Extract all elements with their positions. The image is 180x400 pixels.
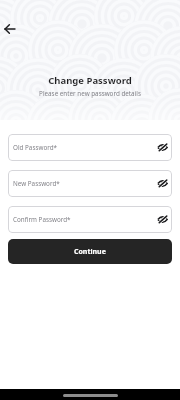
button[interactable]: Toggle password visibility <box>157 142 168 153</box>
button[interactable]: Back <box>2 20 20 38</box>
staticText: Old Password* <box>13 143 58 152</box>
button[interactable]: Confirm Password* <box>8 206 172 233</box>
button[interactable]: New Password* <box>8 170 172 197</box>
button[interactable]: Toggle password visibility <box>157 214 168 225</box>
staticText: Please enter new password details <box>39 89 141 98</box>
staticText: Continue <box>74 247 106 257</box>
button[interactable]: Old Password* <box>8 134 172 161</box>
button[interactable]: Continue <box>8 239 172 264</box>
button[interactable]: Toggle password visibility <box>157 178 168 189</box>
staticText: Confirm Password* <box>13 215 71 224</box>
staticText: New Password* <box>13 179 60 188</box>
staticText: Change Password <box>48 74 132 87</box>
